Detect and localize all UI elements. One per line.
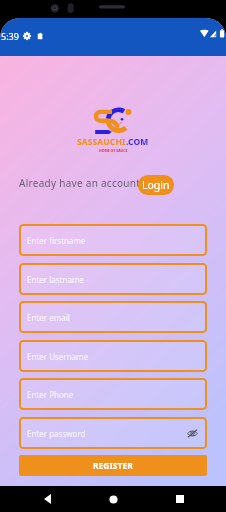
staticText: 5:39 bbox=[1, 30, 19, 42]
button[interactable]: REGISTER bbox=[19, 455, 207, 476]
staticText: SASSAUCHI bbox=[77, 136, 126, 148]
button[interactable]: Enter Phone bbox=[19, 378, 207, 410]
button[interactable]: Enter Username bbox=[19, 340, 207, 372]
other: Toggle password visibility bbox=[187, 428, 198, 439]
staticText: Login bbox=[142, 178, 170, 192]
button[interactable]: Recent apps bbox=[160, 486, 200, 512]
staticText: Already have an account? bbox=[19, 176, 145, 190]
staticText: Enter Phone bbox=[27, 389, 74, 400]
staticText: .COM bbox=[126, 136, 149, 148]
button[interactable]: Enter email bbox=[19, 301, 207, 333]
button[interactable]: Enter lastname bbox=[19, 263, 207, 295]
staticText: Enter Username bbox=[27, 351, 89, 362]
staticText: Enter email bbox=[27, 312, 70, 323]
staticText: REGISTER bbox=[93, 460, 133, 472]
button[interactable]: Enter password bbox=[19, 417, 207, 449]
staticText: Enter lastname bbox=[27, 274, 84, 285]
button[interactable]: Back bbox=[27, 486, 67, 512]
staticText: Enter firstname bbox=[27, 235, 86, 246]
staticText: Enter password bbox=[27, 428, 86, 439]
button[interactable]: Login bbox=[138, 175, 174, 195]
button[interactable]: Home bbox=[93, 486, 133, 512]
staticText: HOME OF SAUCE bbox=[99, 148, 128, 153]
button[interactable]: Enter firstname bbox=[19, 224, 207, 256]
